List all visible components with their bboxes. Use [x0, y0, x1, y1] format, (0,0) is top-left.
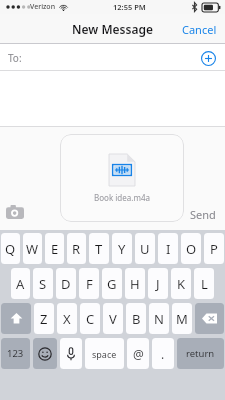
button[interactable]: D	[56, 268, 76, 299]
button[interactable]: J	[148, 268, 168, 299]
button[interactable]: K	[171, 268, 191, 299]
staticText: New Message	[72, 21, 153, 37]
button[interactable]: C	[80, 303, 100, 334]
button[interactable]: Send	[185, 203, 221, 226]
button[interactable]: H	[125, 268, 145, 299]
button[interactable]: Cancel	[174, 16, 225, 43]
staticText: Cancel	[182, 22, 217, 37]
staticText: X	[63, 310, 71, 328]
button[interactable]: M	[172, 303, 192, 334]
button[interactable]: B	[126, 303, 146, 334]
button[interactable]: Shift	[1, 303, 31, 334]
button[interactable]: Emoji	[33, 338, 57, 369]
staticText: H	[130, 275, 140, 293]
button[interactable]: @	[127, 338, 149, 369]
button[interactable]: L	[194, 268, 214, 299]
button[interactable]: S	[33, 268, 53, 299]
staticText: F	[86, 275, 93, 293]
staticText: Verizon	[30, 2, 56, 12]
button[interactable]: Dictation	[60, 338, 82, 369]
staticText: Q	[5, 240, 16, 258]
button[interactable]: Add contact	[197, 47, 219, 69]
staticText: G	[107, 275, 117, 293]
staticText: O	[186, 240, 197, 258]
staticText: S	[39, 275, 47, 293]
staticText: V	[109, 310, 117, 328]
staticText: P	[210, 240, 218, 258]
staticText: J	[156, 275, 160, 293]
staticText: I	[166, 240, 171, 258]
button[interactable]: X	[57, 303, 77, 334]
button[interactable]: Book idea.m4a	[60, 134, 184, 222]
button[interactable]: T	[89, 233, 109, 264]
staticText: W	[26, 240, 39, 258]
staticText: T	[95, 240, 103, 258]
button[interactable]: 123	[1, 338, 30, 369]
button[interactable]: Camera	[3, 200, 27, 224]
button[interactable]: return	[177, 338, 224, 369]
staticText: U	[140, 240, 150, 258]
staticText: space	[92, 348, 117, 360]
button[interactable]: Z	[34, 303, 54, 334]
staticText: M	[176, 310, 188, 328]
staticText: Book idea.m4a	[94, 192, 150, 203]
button[interactable]: P	[204, 233, 224, 264]
button[interactable]: space	[85, 338, 124, 369]
button[interactable]: Backspace	[195, 303, 224, 334]
button[interactable]: O	[181, 233, 201, 264]
staticText: Y	[118, 240, 126, 258]
staticText: B	[132, 310, 141, 328]
button[interactable]: .	[152, 338, 174, 369]
staticText: return	[186, 347, 215, 360]
staticText: E	[51, 240, 59, 258]
staticText: 123	[7, 347, 24, 360]
staticText: D	[61, 275, 71, 293]
staticText: 12:55 PM	[113, 2, 146, 12]
staticText: R	[72, 240, 81, 258]
button[interactable]: E	[45, 233, 64, 264]
button[interactable]: V	[103, 303, 123, 334]
staticText: K	[177, 275, 186, 293]
button[interactable]: F	[79, 268, 99, 299]
button[interactable]: N	[149, 303, 169, 334]
staticText: @	[133, 346, 144, 362]
staticText: Z	[40, 310, 48, 328]
button[interactable]: R	[67, 233, 86, 264]
button[interactable]: Q	[1, 233, 20, 264]
staticText: To:	[8, 51, 22, 65]
staticText: A	[16, 275, 25, 293]
staticText: C	[86, 310, 95, 328]
button[interactable]: G	[102, 268, 122, 299]
staticText: .	[161, 346, 165, 362]
button[interactable]: A	[11, 268, 30, 299]
button[interactable]: I	[158, 233, 178, 264]
staticText: N	[154, 310, 164, 328]
button[interactable]: Y	[112, 233, 132, 264]
staticText: Send	[190, 207, 216, 222]
button[interactable]: U	[135, 233, 155, 264]
button[interactable]: W	[23, 233, 42, 264]
staticText: L	[201, 275, 208, 293]
